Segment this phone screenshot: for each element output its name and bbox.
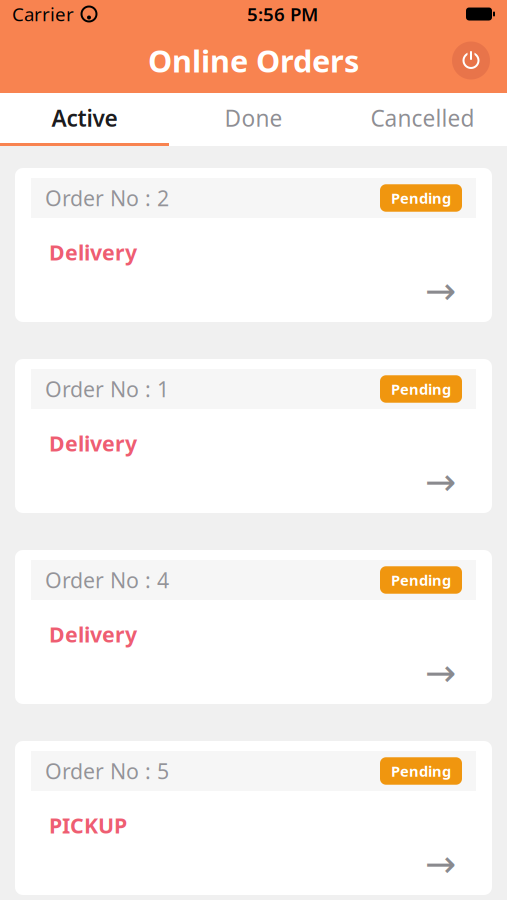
- staticText: Pending: [391, 188, 451, 208]
- staticText: PICKUP: [49, 811, 127, 839]
- staticText: Delivery: [49, 620, 137, 648]
- staticText: Active: [51, 103, 117, 133]
- staticText: Carrier: [12, 2, 74, 26]
- button[interactable]: Log out: [452, 41, 490, 79]
- staticText: Online Orders: [148, 40, 359, 81]
- staticText: Delivery: [49, 429, 137, 457]
- staticText: Pending: [391, 570, 451, 590]
- staticText: →: [425, 461, 456, 503]
- button[interactable]: Active: [0, 93, 169, 143]
- staticText: Done: [224, 103, 282, 133]
- staticText: Order No : 2: [45, 184, 169, 212]
- staticText: →: [425, 652, 456, 694]
- staticText: Pending: [391, 761, 451, 781]
- staticText: Order No : 5: [45, 757, 169, 785]
- button[interactable]: Cancelled: [338, 93, 507, 143]
- button[interactable]: Done: [169, 93, 338, 143]
- button[interactable]: Order No : 4: [15, 550, 492, 704]
- button[interactable]: Order No : 1: [15, 359, 492, 513]
- staticText: 5:56 PM: [247, 2, 318, 26]
- staticText: Cancelled: [370, 103, 474, 133]
- staticText: Order No : 4: [45, 566, 169, 594]
- button[interactable]: Order No : 2: [15, 168, 492, 322]
- staticText: Pending: [391, 379, 451, 399]
- staticText: →: [425, 843, 456, 885]
- staticText: Delivery: [49, 238, 137, 266]
- staticText: Order No : 1: [45, 375, 169, 403]
- button[interactable]: Order No : 5: [15, 741, 492, 895]
- staticText: →: [425, 270, 456, 312]
